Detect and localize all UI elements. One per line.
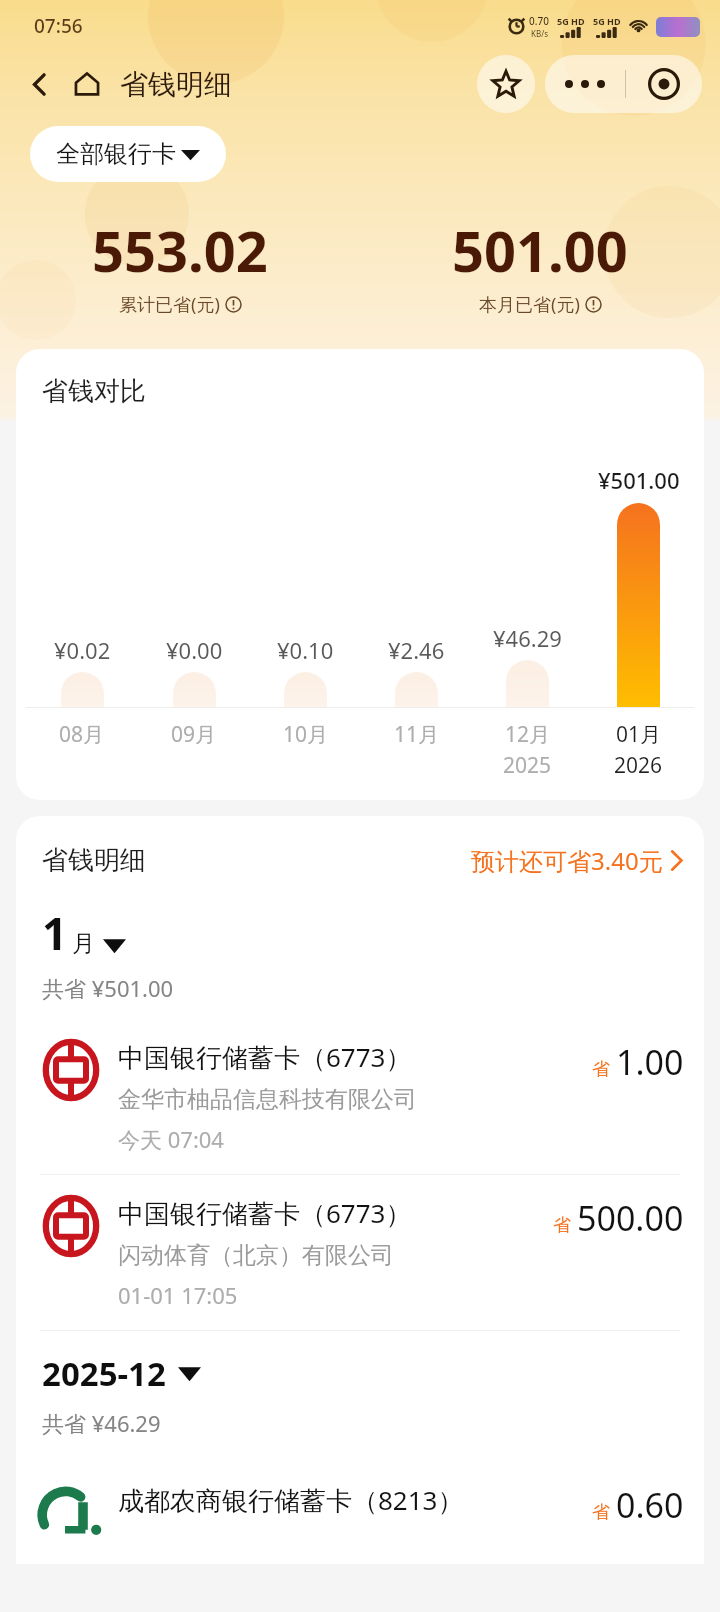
button[interactable]: 2025-12 (42, 1351, 201, 1396)
staticText: 2026 (614, 751, 663, 780)
staticText: ¥0.10 (277, 635, 334, 665)
button[interactable]: Back (16, 61, 62, 107)
staticText: 预计还可省3.40元 (471, 844, 663, 877)
staticText: ¥0.00 (166, 635, 223, 665)
staticText: ¥501.00 (598, 465, 680, 495)
button[interactable]: More options (545, 55, 625, 113)
button[interactable]: 1 (42, 903, 126, 963)
staticText: 08月 (59, 720, 105, 749)
button[interactable]: Favorite (477, 55, 535, 113)
button[interactable]: 成都农商银行储蓄卡（8213） (16, 1462, 704, 1564)
staticText: 共省 ¥46.29 (42, 1408, 161, 1438)
staticText: 0.60 (616, 1482, 684, 1528)
staticText: KB/s (531, 28, 548, 39)
staticText: 2025 (503, 751, 552, 780)
button[interactable]: Home (64, 61, 110, 107)
staticText: 省钱明细 (42, 844, 146, 877)
staticText: 省钱对比 (42, 375, 146, 408)
staticText: 1 (42, 903, 68, 963)
staticText: 省钱明细 (120, 67, 232, 102)
staticText: 07:56 (34, 13, 83, 39)
staticText: 全部银行卡 (56, 139, 176, 169)
button[interactable]: Close (626, 55, 702, 113)
staticText: ¥46.29 (493, 623, 562, 653)
staticText: 12月 (505, 720, 551, 749)
staticText: 共省 ¥501.00 (42, 973, 174, 1003)
staticText: 省 (592, 1058, 610, 1081)
staticText: 省 (553, 1214, 571, 1237)
staticText: 累计已省(元) (119, 292, 220, 317)
staticText: ¥2.46 (388, 635, 445, 665)
staticText: 500.00 (577, 1195, 684, 1241)
staticText: 5G HD (593, 15, 621, 27)
staticText: 01月 (616, 720, 662, 749)
staticText: 1.00 (616, 1039, 684, 1085)
staticText: 2025-12 (42, 1351, 166, 1396)
staticText: 金华市柚品信息科技有限公司 (118, 1085, 417, 1114)
staticText: 中国银行储蓄卡（6773） (118, 1039, 412, 1075)
button[interactable]: 中国银行储蓄卡（6773） (16, 1019, 704, 1174)
button[interactable]: 全部银行卡 (30, 126, 226, 182)
staticText: 501.00 (452, 212, 628, 288)
staticText: ¥0.02 (54, 635, 111, 665)
staticText: 成都农商银行储蓄卡（8213） (118, 1482, 464, 1518)
staticText: 01-01 17:05 (118, 1280, 238, 1310)
staticText: 月 (72, 929, 95, 958)
button[interactable]: 预计还可省3.40元 (471, 844, 684, 877)
staticText: 10月 (283, 720, 329, 749)
staticText: 5G HD (557, 15, 585, 27)
staticText: 中国银行储蓄卡（6773） (118, 1195, 412, 1231)
staticText: 11月 (394, 720, 440, 749)
staticText: 553.02 (92, 212, 268, 288)
staticText: 省 (592, 1501, 610, 1524)
staticText: 今天 07:04 (118, 1124, 224, 1154)
staticText: 闪动体育（北京）有限公司 (118, 1241, 394, 1270)
staticText: 本月已省(元) (479, 292, 580, 317)
button[interactable]: 中国银行储蓄卡（6773） (16, 1175, 704, 1330)
staticText: 0.70 (529, 14, 549, 28)
staticText: 09月 (171, 720, 217, 749)
